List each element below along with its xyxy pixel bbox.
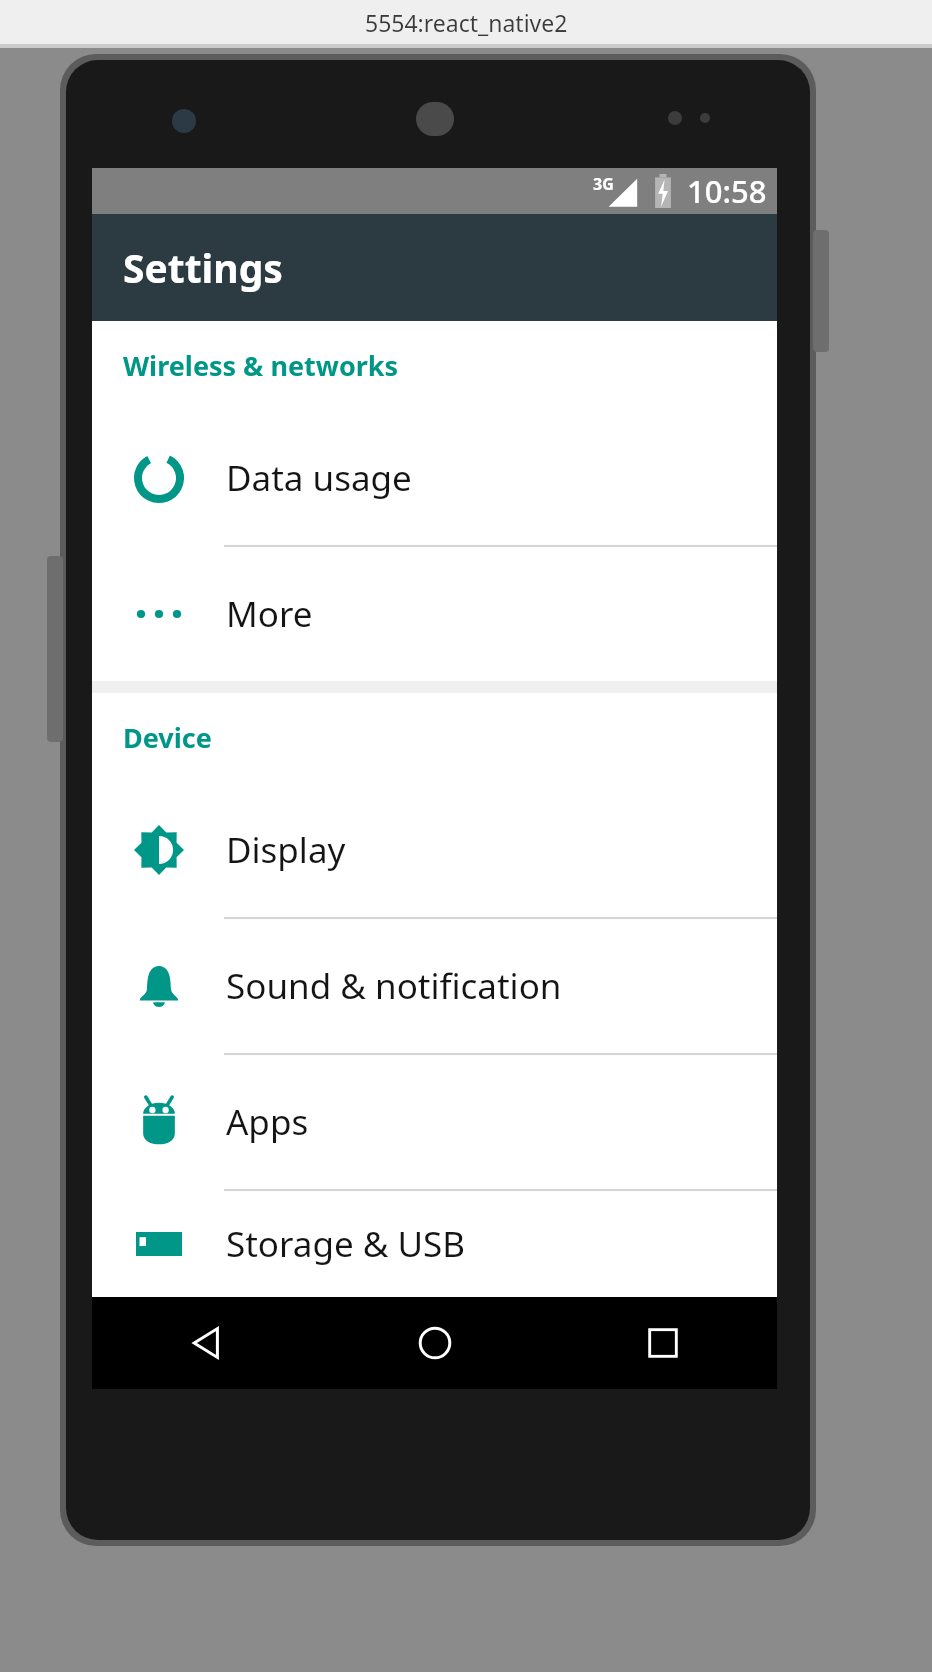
- staticText: More: [226, 590, 313, 638]
- button[interactable]: Recent apps: [549, 1297, 777, 1389]
- button[interactable]: Back: [92, 1297, 321, 1389]
- staticText: 5554:react_native2: [365, 7, 568, 38]
- staticText: Device: [123, 719, 212, 756]
- button[interactable]: Apps: [92, 1055, 777, 1191]
- button[interactable]: More: [92, 547, 777, 681]
- staticText: Display: [226, 826, 346, 874]
- staticText: 10:58: [687, 170, 767, 212]
- staticText: Sound & notification: [226, 962, 562, 1010]
- button[interactable]: Data usage: [92, 411, 777, 547]
- staticText: Wireless & networks: [123, 347, 399, 384]
- staticText: Storage & USB: [226, 1220, 466, 1268]
- staticText: Settings: [123, 241, 283, 294]
- button[interactable]: Storage & USB: [92, 1191, 777, 1297]
- staticText: Data usage: [226, 454, 412, 502]
- staticText: 3G: [593, 173, 614, 195]
- button[interactable]: Display: [92, 783, 777, 919]
- staticText: Apps: [226, 1098, 309, 1146]
- button[interactable]: Sound & notification: [92, 919, 777, 1055]
- button[interactable]: Home: [321, 1297, 549, 1389]
